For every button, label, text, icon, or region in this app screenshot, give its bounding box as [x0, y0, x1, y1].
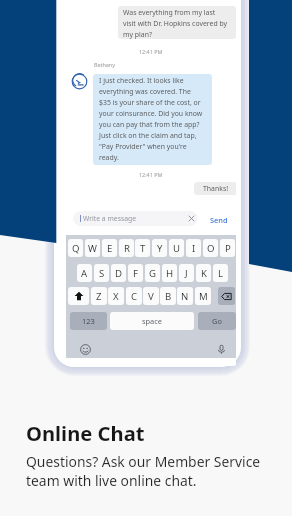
staticText: I	[192, 242, 196, 255]
button[interactable]: S	[94, 264, 109, 282]
button[interactable]: A	[77, 264, 92, 282]
staticText: N	[181, 290, 189, 303]
staticText: Thanks!	[203, 184, 229, 193]
staticText: Y	[157, 242, 163, 255]
button[interactable]: T	[135, 239, 150, 257]
staticText: B	[165, 290, 172, 303]
button[interactable]: M	[195, 287, 211, 305]
staticText: Questions? Ask our Member Service team w…	[26, 452, 261, 490]
staticText: R	[124, 242, 130, 255]
staticText: V	[148, 290, 154, 303]
staticText: Write a message	[83, 214, 136, 223]
button[interactable]: Send	[210, 215, 228, 225]
staticText: W	[88, 242, 97, 255]
button[interactable]: C	[126, 287, 142, 305]
staticText: Q	[72, 242, 80, 255]
staticText: Send	[210, 215, 228, 225]
button[interactable]: 123	[70, 312, 107, 330]
button[interactable]: Y	[152, 239, 167, 257]
button[interactable]: Clear text	[188, 215, 195, 222]
button[interactable]: Shift	[68, 287, 89, 305]
button[interactable]: K	[196, 264, 211, 282]
button[interactable]: L	[213, 264, 228, 282]
staticText: G	[149, 267, 156, 280]
staticText: F	[133, 267, 138, 280]
staticText: I just checked. It looks like everything…	[99, 76, 203, 162]
button[interactable]: J	[179, 264, 194, 282]
button[interactable]: N	[177, 287, 193, 305]
staticText: O	[207, 242, 215, 255]
staticText: 123	[82, 316, 95, 326]
button[interactable]: V	[143, 287, 159, 305]
button[interactable]: Thanks!	[194, 182, 236, 195]
button[interactable]: D	[111, 264, 126, 282]
button[interactable]: P	[220, 239, 235, 257]
staticText: Was everything from my last visit with D…	[123, 8, 228, 39]
staticText: H	[166, 267, 174, 280]
staticText: M	[199, 290, 208, 303]
staticText: D	[115, 267, 123, 280]
button[interactable]: I	[186, 239, 201, 257]
staticText: L	[218, 267, 224, 280]
button[interactable]: W	[85, 239, 100, 257]
staticText: U	[173, 242, 181, 255]
button[interactable]: I just checked. It looks like everything…	[93, 74, 212, 165]
button[interactable]: space	[110, 312, 194, 330]
other: Shift	[74, 291, 84, 301]
button[interactable]: O	[203, 239, 218, 257]
staticText: 12:41 PM	[139, 171, 163, 178]
button[interactable]: Emoji	[80, 344, 91, 355]
staticText: space	[142, 316, 162, 326]
staticText: S	[99, 267, 105, 280]
other: Bethany avatar	[71, 73, 88, 90]
staticText: 12:41 PM	[139, 48, 163, 55]
staticText: A	[81, 267, 88, 280]
staticText: K	[201, 267, 207, 280]
button[interactable]: H	[162, 264, 177, 282]
button[interactable]: Online Chat	[26, 419, 145, 447]
button[interactable]: Was everything from my last visit with D…	[118, 6, 236, 39]
staticText: T	[140, 242, 146, 255]
button[interactable]: Z	[91, 287, 107, 305]
staticText: Bethany	[94, 61, 115, 68]
other: Backspace	[221, 291, 232, 302]
button[interactable]: Write a message	[73, 211, 198, 226]
button[interactable]: U	[169, 239, 184, 257]
button[interactable]: Voice input	[216, 344, 227, 355]
button[interactable]: Q	[68, 239, 83, 257]
staticText: P	[225, 242, 231, 255]
button[interactable]: E	[102, 239, 117, 257]
staticText: E	[107, 242, 113, 255]
staticText: C	[131, 290, 138, 303]
staticText: J	[185, 267, 188, 280]
button[interactable]: G	[145, 264, 160, 282]
staticText: Go	[212, 316, 222, 326]
button[interactable]: Backspace	[218, 287, 235, 305]
staticText: X	[113, 290, 119, 303]
button[interactable]: B	[160, 287, 176, 305]
button[interactable]: Go	[198, 312, 236, 330]
button[interactable]: R	[119, 239, 134, 257]
button[interactable]: F	[128, 264, 143, 282]
staticText: Z	[96, 290, 102, 303]
button[interactable]: X	[108, 287, 124, 305]
